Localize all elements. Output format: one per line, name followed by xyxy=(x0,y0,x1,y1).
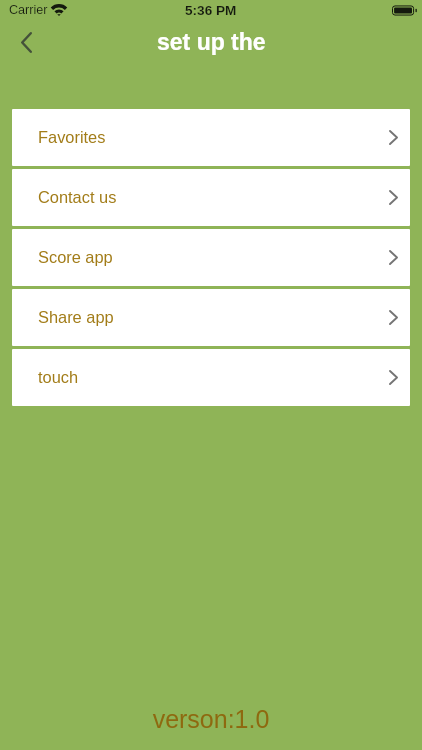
button[interactable]: Back xyxy=(0,20,52,64)
staticText: Favorites xyxy=(38,128,106,146)
button[interactable]: Score app xyxy=(12,229,410,286)
button[interactable]: Share app xyxy=(12,289,410,346)
staticText: set up the xyxy=(157,29,266,55)
staticText: Contact us xyxy=(38,188,117,206)
staticText: touch xyxy=(38,368,79,386)
button[interactable]: Favorites xyxy=(12,109,410,166)
staticText: verson:1.0 xyxy=(0,705,422,733)
staticText: Score app xyxy=(38,248,113,266)
button[interactable]: Contact us xyxy=(12,169,410,226)
staticText: Carrier xyxy=(9,3,48,17)
staticText: Share app xyxy=(38,308,114,326)
button[interactable]: touch xyxy=(12,349,410,406)
staticText: 5:36 PM xyxy=(185,3,237,18)
